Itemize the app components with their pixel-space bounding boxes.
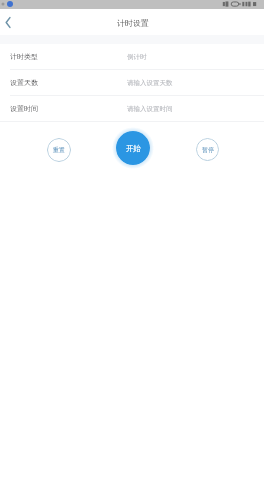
staticText: 倒计时 bbox=[127, 53, 264, 61]
staticText: 请输入设置时间 bbox=[127, 105, 264, 113]
staticText: 计时类型 bbox=[10, 52, 38, 61]
staticText: 请输入设置天数 bbox=[127, 79, 264, 87]
button[interactable]: 计时类型 bbox=[0, 44, 264, 69]
staticText: 暂停 bbox=[202, 146, 214, 154]
button[interactable]: 设置天数 bbox=[0, 70, 264, 95]
button[interactable]: 重置 bbox=[47, 138, 71, 162]
staticText: 设置时间 bbox=[10, 104, 38, 113]
button[interactable]: 设置时间 bbox=[0, 96, 264, 121]
button[interactable]: Back bbox=[0, 9, 15, 35]
button[interactable]: 暂停 bbox=[196, 138, 219, 161]
staticText: 重置 bbox=[53, 146, 65, 154]
button[interactable]: 开始 bbox=[116, 131, 150, 165]
staticText: 计时设置 bbox=[117, 18, 149, 28]
staticText: 开始 bbox=[126, 144, 141, 153]
staticText: 设置天数 bbox=[10, 78, 38, 87]
